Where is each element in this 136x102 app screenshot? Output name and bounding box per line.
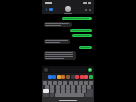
button[interactable]: App [80,75,84,79]
button[interactable] [70,29,92,32]
button[interactable] [64,6,72,14]
button[interactable]: App [48,75,52,79]
button[interactable]: Key [77,85,81,89]
button[interactable]: Key [50,89,54,93]
button[interactable]: Shift [43,89,49,93]
button[interactable] [44,39,70,44]
button[interactable]: App [57,75,61,79]
button[interactable]: Key [84,81,88,85]
button[interactable]: Key [61,89,65,93]
button[interactable] [79,46,92,49]
button[interactable]: App [71,75,75,79]
button[interactable]: Key [58,81,62,85]
button[interactable]: App [75,75,79,79]
button[interactable]: Key [45,85,49,89]
button[interactable]: Action [89,9,91,11]
button[interactable]: Key [63,81,67,85]
button[interactable]: Key [71,85,75,89]
button[interactable] [44,22,72,27]
button[interactable]: Key [87,85,91,89]
button[interactable]: Key [61,85,65,89]
button[interactable]: Key [71,89,75,93]
button[interactable]: Key [53,81,57,85]
button[interactable]: Key [89,81,93,85]
button[interactable]: Apps [44,68,48,72]
button[interactable]: App [52,75,56,79]
button[interactable]: Key [66,85,70,89]
button[interactable]: Key [56,85,60,89]
button[interactable] [44,51,76,60]
button[interactable]: Key [50,85,54,89]
button[interactable]: Key [66,89,70,93]
button[interactable]: Key [82,89,86,93]
button[interactable]: Key [69,81,73,85]
button[interactable]: Key [82,85,86,89]
button[interactable]: Key [77,89,81,93]
button[interactable] [62,17,92,20]
button[interactable]: Back [44,7,54,12]
button[interactable]: App [84,75,88,79]
button[interactable]: Key [74,81,78,85]
button[interactable]: App [66,75,70,79]
button[interactable]: Key [56,89,60,93]
button[interactable]: Key [79,81,83,85]
button[interactable]: App [89,75,93,79]
button[interactable]: App [61,75,65,79]
button[interactable]: Key [43,81,47,85]
button[interactable] [72,34,92,37]
button[interactable]: Action [85,9,87,11]
button[interactable]: Key [48,81,52,85]
button[interactable]: Send [88,68,92,72]
